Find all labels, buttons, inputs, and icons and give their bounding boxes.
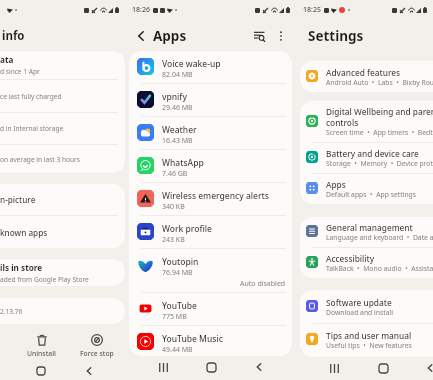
button[interactable]: ils in store [0, 259, 125, 286]
staticText: Work profile [162, 223, 212, 235]
button[interactable]: Digital Wellbeing and parental controls [300, 101, 433, 142]
staticText: Storage • Memory • Device protection [326, 159, 433, 168]
staticText: Default apps • App settings [326, 190, 417, 199]
button[interactable]: Force stop [69, 330, 124, 362]
button[interactable]: Search [250, 27, 268, 45]
button[interactable]: Back [420, 358, 433, 378]
staticText: info [2, 28, 25, 44]
button[interactable]: Home [373, 358, 393, 378]
button[interactable]: Back [249, 357, 269, 377]
button[interactable]: General management [300, 217, 433, 247]
button[interactable]: known apps [0, 216, 125, 248]
button[interactable]: vpnify [129, 84, 292, 116]
button[interactable]: 2.13.76 [0, 298, 125, 324]
staticText: Auto disabled [240, 279, 286, 289]
staticText: ata [0, 54, 14, 65]
button[interactable]: on average in last 3 hours [0, 145, 125, 173]
button[interactable]: WhatsApp [129, 150, 292, 182]
button[interactable]: Uninstall [14, 330, 69, 362]
staticText: Apps [326, 179, 346, 190]
button[interactable]: Recents [153, 357, 173, 377]
button[interactable]: Wireless emergency alerts [129, 183, 292, 215]
staticText: Android Auto • Labs • Bixby Routines [326, 78, 433, 87]
staticText: 775 MB [162, 312, 187, 322]
staticText: Software update [326, 297, 392, 308]
staticText: Force stop [80, 349, 114, 358]
staticText: n-picture [0, 194, 36, 205]
button[interactable]: ce last fully charged [0, 80, 125, 112]
staticText: 16.43 MB [162, 136, 193, 146]
button[interactable]: Home [201, 357, 221, 377]
staticText: Screen time • App timers • Bedtime [326, 128, 433, 137]
staticText: YouTube [162, 300, 197, 312]
staticText: 76.94 MB [162, 268, 193, 278]
staticText: Digital Wellbeing and parental controls [326, 106, 433, 128]
staticText: 49.44 MB [162, 345, 193, 355]
staticText: Weather [162, 124, 197, 136]
staticText: Apps [153, 27, 187, 45]
staticText: Advanced features [326, 67, 401, 78]
staticText: 18:26 [132, 5, 150, 15]
button[interactable]: More options [273, 28, 289, 44]
staticText: 243 KB [162, 235, 185, 245]
button[interactable]: Tips and user manual [300, 323, 433, 357]
button[interactable]: Home [31, 362, 51, 380]
staticText: d since 1 Apr [0, 67, 40, 76]
staticText: 2.13.76 [0, 307, 23, 316]
staticText: Accessibility [326, 253, 375, 264]
staticText: General management [326, 222, 413, 233]
button[interactable]: ata [0, 51, 125, 79]
button[interactable]: Back [79, 362, 99, 380]
staticText: Tips and user manual [326, 330, 412, 341]
staticText: 82.04 MB [162, 70, 193, 80]
staticText: 340 KB [162, 202, 185, 212]
button[interactable]: Apps [300, 173, 433, 204]
staticText: ce last fully charged [0, 92, 62, 101]
staticText: Wireless emergency alerts [162, 190, 269, 202]
staticText: Uninstall [27, 349, 56, 358]
button[interactable]: Weather [129, 117, 292, 149]
staticText: known apps [0, 227, 48, 238]
staticText: Voice wake-up [162, 58, 221, 70]
staticText: 18:25 [303, 5, 321, 15]
button[interactable]: Accessibility [300, 247, 433, 278]
button[interactable]: Back [132, 27, 149, 44]
button[interactable]: Recents [324, 358, 344, 378]
button[interactable]: Software update [300, 290, 433, 323]
staticText: Language and keyboard • Date and time [326, 233, 433, 242]
staticText: Battery and device care [326, 148, 419, 159]
button[interactable]: Battery and device care [300, 142, 433, 173]
button[interactable]: d in Internal storage [0, 113, 125, 144]
button[interactable]: Advanced features [300, 61, 433, 92]
staticText: WhatsApp [162, 157, 204, 169]
button[interactable]: YouTube [129, 293, 292, 325]
staticText: 29.46 MB [162, 103, 193, 113]
button[interactable]: YouTube Music [129, 326, 292, 356]
button[interactable]: Youtopin [129, 249, 292, 292]
staticText: on average in last 3 hours [0, 155, 80, 164]
staticText: 7.46 GB [162, 169, 188, 179]
staticText: d in Internal storage [0, 124, 64, 133]
staticText: vpnify [162, 91, 187, 103]
staticText: aded from Google Play Store [0, 275, 89, 284]
button[interactable]: Voice wake-up [129, 51, 292, 83]
staticText: Download and install [326, 308, 394, 317]
staticText: Settings [308, 27, 364, 45]
button[interactable]: n-picture [0, 184, 125, 215]
staticText: Youtopin [162, 256, 199, 268]
staticText: ils in store [0, 262, 43, 273]
button[interactable]: Work profile [129, 216, 292, 248]
staticText: TalkBack • Mono audio • Assistant menu [326, 264, 433, 273]
staticText: Useful tips • New features [326, 341, 412, 350]
staticText: YouTube Music [162, 333, 223, 345]
